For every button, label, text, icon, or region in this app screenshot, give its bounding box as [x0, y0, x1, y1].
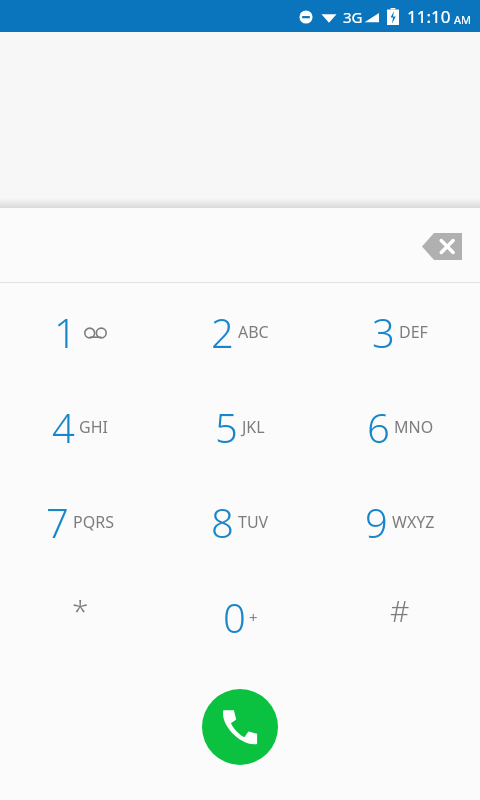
button[interactable]: 6 — [320, 400, 480, 454]
staticText: MNO — [394, 416, 434, 438]
staticText: WXYZ — [392, 511, 435, 533]
button[interactable]: 0 — [160, 590, 320, 644]
staticText: PQRS — [73, 511, 114, 533]
staticText: 7 — [46, 495, 69, 549]
button[interactable]: 8 — [160, 495, 320, 549]
button[interactable]: 1 — [0, 305, 160, 359]
staticText: # — [390, 590, 410, 631]
staticText: 3 — [372, 305, 395, 359]
staticText: ABC — [238, 321, 269, 343]
staticText: 9 — [365, 495, 388, 549]
button[interactable]: 5 — [160, 400, 320, 454]
staticText: AM — [454, 12, 472, 27]
button[interactable]: Backspace — [414, 218, 470, 274]
staticText: 11:10 — [407, 5, 451, 28]
staticText: 2 — [211, 305, 234, 359]
button[interactable]: 3 — [320, 305, 480, 359]
staticText: TUV — [238, 511, 269, 533]
staticText: 6 — [367, 400, 390, 454]
staticText: * — [72, 590, 89, 631]
staticText: 0 — [223, 590, 246, 644]
staticText: JKL — [242, 416, 265, 438]
staticText: 1 — [54, 305, 77, 359]
button[interactable]: * — [0, 590, 160, 631]
button[interactable]: 9 — [320, 495, 480, 549]
staticText: GHI — [79, 416, 108, 438]
button[interactable]: 2 — [160, 305, 320, 359]
staticText: 3G — [343, 7, 363, 27]
staticText: + — [249, 607, 258, 627]
staticText: 5 — [215, 400, 238, 454]
staticText: 4 — [52, 400, 75, 454]
staticText: 8 — [211, 495, 234, 549]
button[interactable]: 7 — [0, 495, 160, 549]
button[interactable]: Call — [202, 689, 278, 765]
staticText: DEF — [399, 321, 428, 343]
button[interactable]: 4 — [0, 400, 160, 454]
button[interactable]: # — [320, 590, 480, 631]
